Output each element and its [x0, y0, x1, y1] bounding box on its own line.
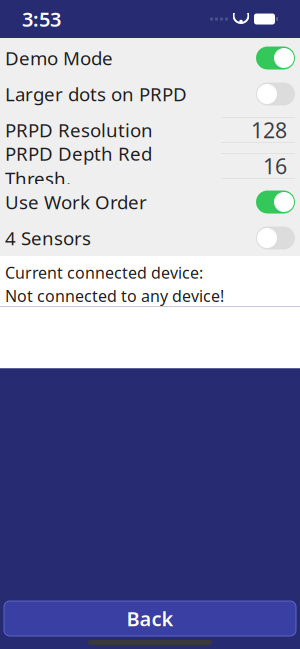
button[interactable]: Larger dots on PRPD	[0, 76, 300, 112]
staticText: Use Work Order	[5, 190, 147, 214]
staticText: Not connected to any device!	[5, 285, 224, 306]
staticText: 16	[263, 152, 287, 180]
staticText: Current connected device:	[5, 262, 203, 283]
button[interactable]: Demo Mode	[0, 40, 300, 76]
button[interactable]: 4 Sensors	[0, 220, 300, 256]
button[interactable]: PRPD Resolution	[0, 112, 300, 148]
staticText: PRPD Resolution	[5, 118, 153, 142]
button[interactable]: Back	[4, 601, 296, 636]
staticText: Larger dots on PRPD	[5, 82, 187, 106]
staticText: Demo Mode	[5, 46, 113, 70]
button[interactable]: Use Work Order	[0, 184, 300, 220]
staticText: 4 Sensors	[5, 226, 91, 250]
staticText: 3:53	[22, 6, 61, 32]
staticText: Back	[126, 605, 173, 632]
staticText: PRPD Depth Red Thresh.	[5, 141, 152, 191]
staticText: 128	[251, 116, 287, 144]
button[interactable]: PRPD Depth Red Thresh.	[0, 148, 300, 184]
